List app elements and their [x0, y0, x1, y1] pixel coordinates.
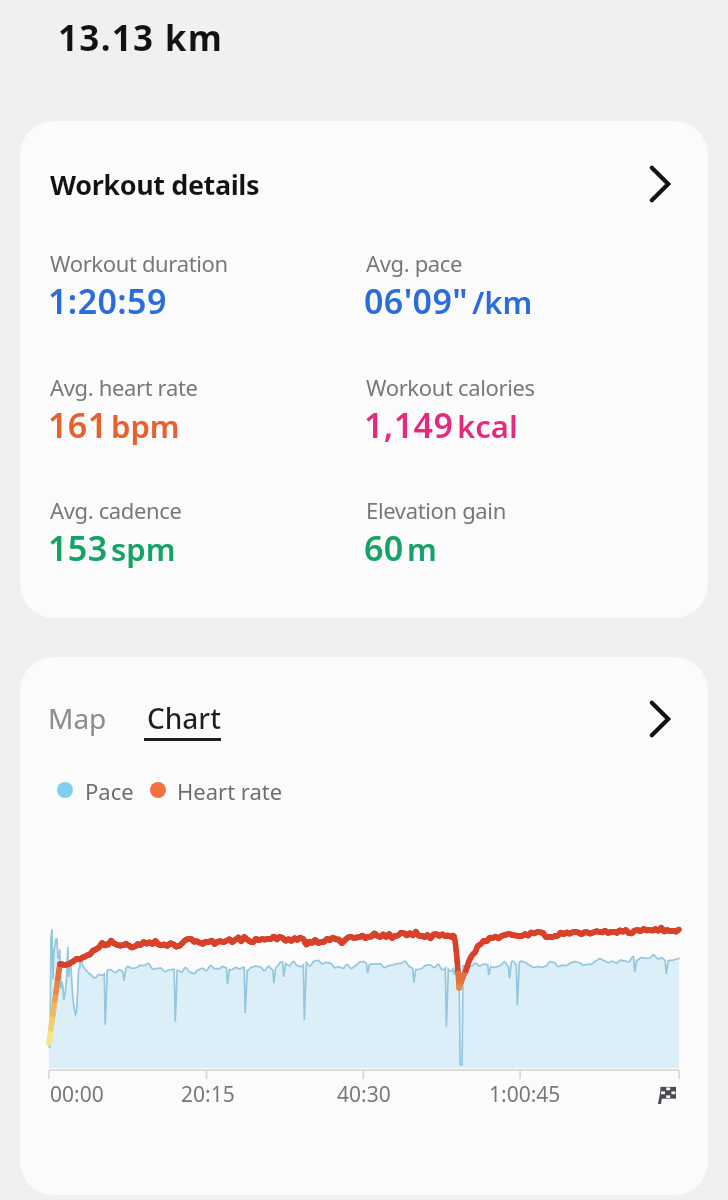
staticText: 1:00:45 — [489, 1080, 561, 1109]
staticText: 20:15 — [181, 1080, 235, 1109]
button[interactable]: Chart — [138, 690, 222, 743]
button[interactable]: Map — [42, 696, 112, 740]
staticText: kcal — [457, 405, 518, 447]
staticText: Chart — [147, 699, 221, 737]
staticText: /km — [472, 281, 533, 323]
staticText: bpm — [111, 405, 180, 447]
button[interactable]: Open workout details — [635, 159, 685, 209]
staticText: Map — [48, 699, 107, 737]
staticText: Workout duration — [50, 248, 228, 278]
staticText: Avg. heart rate — [50, 372, 198, 402]
staticText: 60 — [364, 525, 404, 571]
staticText: spm — [111, 528, 176, 570]
button[interactable]: Map — [20, 657, 708, 1195]
staticText: Elevation gain — [366, 495, 506, 525]
staticText: 1:20:59 — [48, 278, 167, 324]
staticText: 06'09" — [364, 278, 469, 324]
button[interactable]: Open chart — [635, 694, 685, 744]
staticText: 1,149 — [364, 402, 454, 448]
button[interactable]: Workout details — [20, 121, 708, 618]
staticText: 13.13 km — [58, 14, 224, 62]
staticText: Avg. pace — [366, 248, 463, 278]
staticText: Workout details — [50, 166, 260, 203]
staticText: Workout calories — [366, 372, 535, 402]
staticText: Pace — [85, 776, 134, 806]
staticText: Heart rate — [177, 776, 283, 806]
staticText: 00:00 — [50, 1080, 104, 1109]
staticText: 153 — [48, 525, 108, 571]
staticText: 40:30 — [337, 1080, 391, 1109]
staticText: 161 — [48, 402, 108, 448]
staticText: Avg. cadence — [50, 495, 182, 525]
staticText: m — [407, 528, 437, 570]
